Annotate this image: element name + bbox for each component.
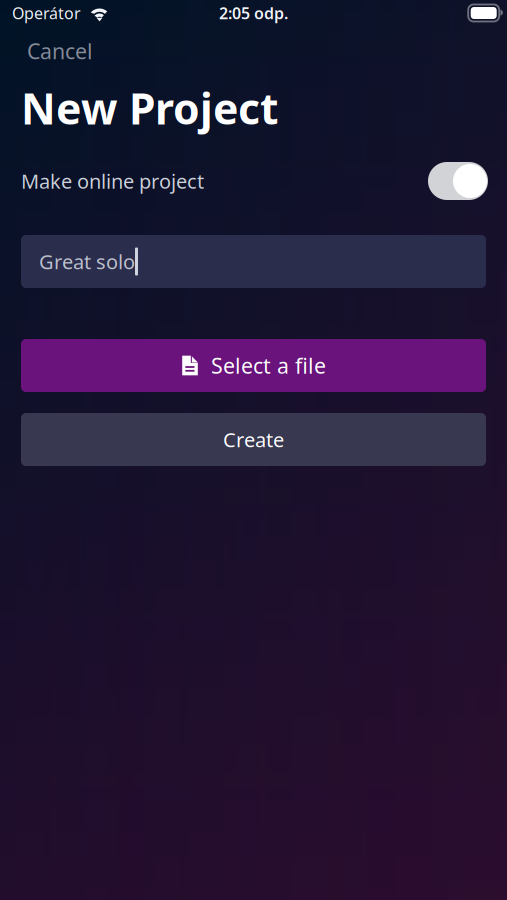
staticText: Select a file [211,351,326,380]
staticText: Operátor [12,2,81,24]
button[interactable]: Select a file [21,339,486,392]
staticText: Cancel [27,37,93,65]
staticText: New Project [21,80,279,136]
staticText: 2:05 odp. [219,2,288,24]
staticText: Create [223,426,284,453]
staticText: Great solo [39,248,135,275]
staticText: Make online project [21,168,204,194]
button[interactable]: Create [21,413,486,466]
button[interactable]: Cancel [0,34,120,68]
button[interactable]: Make online project [428,162,488,200]
